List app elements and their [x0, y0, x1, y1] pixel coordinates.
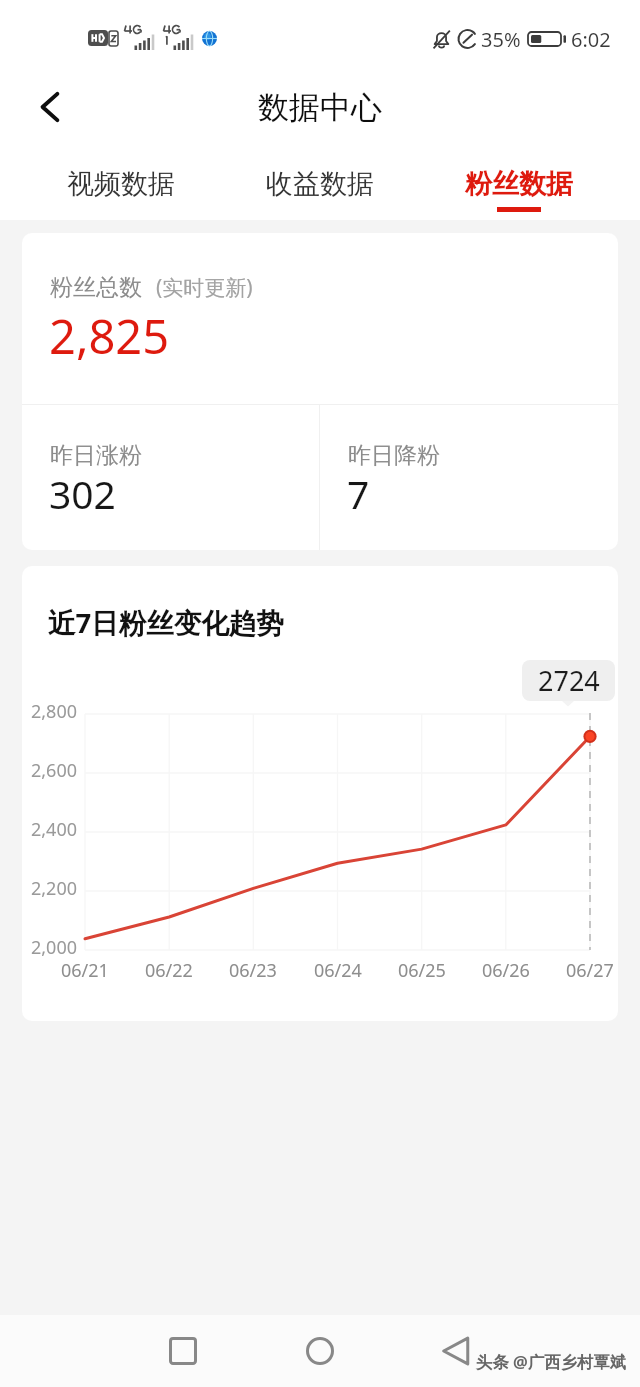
staticText: 06/24 — [314, 958, 362, 983]
button[interactable]: Back — [428, 1323, 484, 1379]
button[interactable]: Home — [292, 1323, 348, 1379]
staticText: 302 — [49, 467, 116, 520]
button[interactable]: 粉丝数据 — [419, 148, 618, 220]
staticText: 昨日涨粉 — [50, 441, 142, 470]
staticText: 2,600 — [30, 758, 77, 783]
button[interactable]: Back — [21, 77, 77, 133]
button[interactable]: 收益数据 — [220, 148, 419, 220]
staticText: 06/21 — [61, 958, 109, 983]
staticText: 数据中心 — [258, 88, 382, 127]
staticText: 视频数据 — [67, 167, 175, 201]
staticText: 近7日粉丝变化趋势 — [48, 604, 284, 642]
staticText: 06/25 — [398, 958, 446, 983]
staticText: 2,000 — [30, 935, 77, 960]
staticText: 06/23 — [229, 958, 277, 983]
staticText: 06/22 — [145, 958, 193, 983]
staticText: 头条 @广西乡村覃斌 — [476, 1350, 627, 1372]
staticText: (实时更新) — [156, 273, 253, 302]
staticText: 6:02 — [571, 26, 611, 53]
staticText: 2,800 — [30, 699, 77, 724]
button[interactable]: 视频数据 — [22, 148, 220, 220]
staticText: 收益数据 — [266, 167, 374, 201]
staticText: 粉丝数据 — [465, 167, 573, 201]
staticText: 2,825 — [49, 304, 170, 368]
staticText: 2724 — [538, 662, 600, 699]
staticText: 06/26 — [482, 958, 530, 983]
staticText: 06/27 — [566, 958, 614, 983]
staticText: 7 — [347, 467, 370, 520]
staticText: 2,200 — [30, 876, 77, 901]
staticText: 昨日降粉 — [348, 441, 440, 470]
staticText: 2,400 — [30, 817, 77, 842]
staticText: 35% — [481, 26, 521, 53]
button[interactable]: Recent apps — [155, 1323, 211, 1379]
staticText: 粉丝总数 — [50, 273, 142, 302]
